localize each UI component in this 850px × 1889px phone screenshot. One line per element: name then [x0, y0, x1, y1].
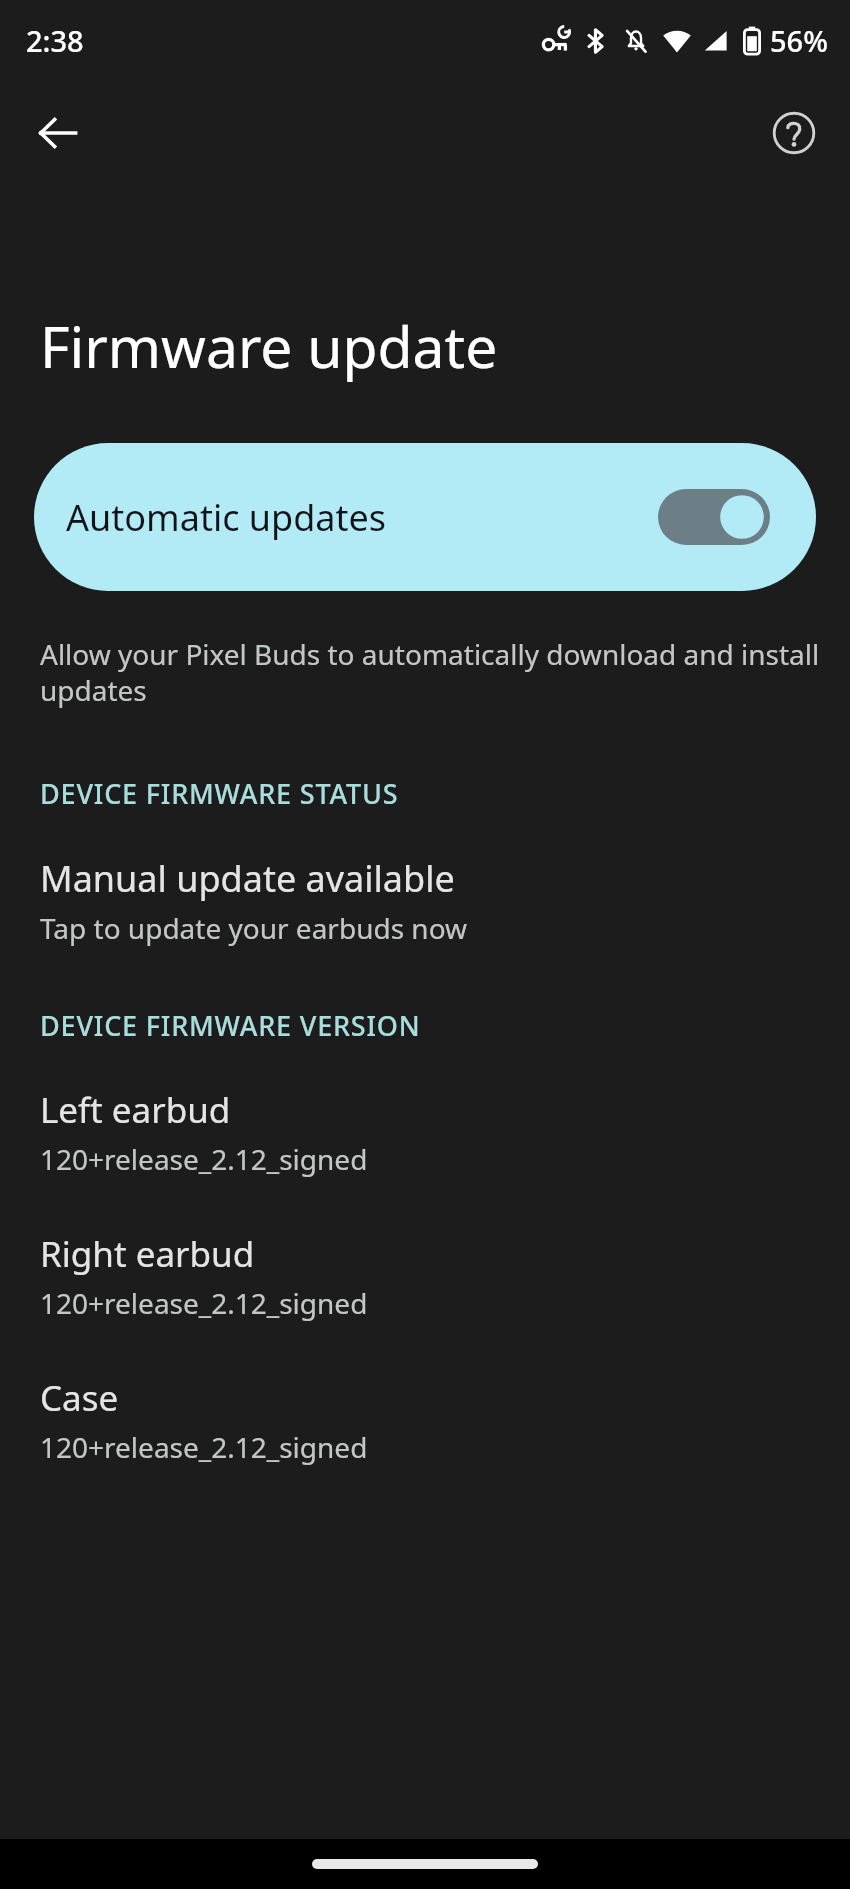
staticText: DEVICE FIRMWARE VERSION [40, 1007, 421, 1044]
staticText: 120+release_2.12_signed [40, 1140, 368, 1178]
button[interactable]: Manual update available [0, 852, 850, 949]
staticText: Case [40, 1374, 119, 1422]
staticText: Automatic updates [66, 493, 387, 542]
button[interactable]: Automatic updates [34, 443, 816, 591]
staticText: 120+release_2.12_signed [40, 1284, 368, 1322]
button[interactable]: Case [0, 1372, 850, 1468]
staticText: Manual update available [40, 854, 455, 903]
staticText: 2:38 [26, 21, 84, 60]
staticText: Firmware update [40, 307, 498, 385]
staticText: Right earbud [40, 1230, 255, 1278]
button[interactable]: Right earbud [0, 1228, 850, 1324]
button[interactable]: Left earbud [0, 1084, 850, 1180]
staticText: Allow your Pixel Buds to automatically d… [40, 635, 834, 709]
staticText: Tap to update your earbuds now [40, 909, 468, 947]
staticText: DEVICE FIRMWARE STATUS [40, 775, 399, 812]
button[interactable]: Help [756, 95, 832, 171]
staticText: 120+release_2.12_signed [40, 1428, 368, 1466]
button[interactable]: Back [20, 95, 96, 171]
staticText: 56% [770, 21, 828, 60]
staticText: Left earbud [40, 1086, 231, 1134]
